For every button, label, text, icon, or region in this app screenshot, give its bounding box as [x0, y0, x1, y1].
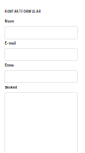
staticText: E-mail [5, 41, 16, 45]
staticText: Besked [5, 85, 17, 89]
staticText: KONTAKTFORMULAR [5, 10, 41, 13]
button[interactable] [5, 49, 77, 61]
button[interactable] [5, 71, 77, 83]
staticText: Emne [5, 63, 14, 67]
staticText: Navn [5, 19, 14, 23]
